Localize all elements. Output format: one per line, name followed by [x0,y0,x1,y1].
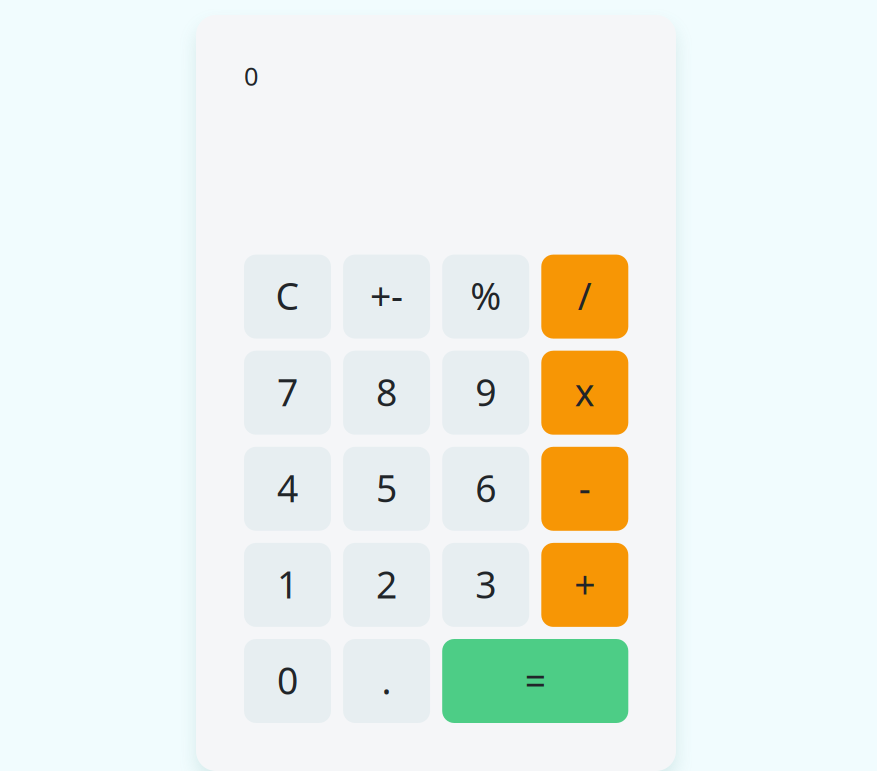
staticText: 0 [277,655,298,705]
button[interactable]: . [343,639,430,723]
staticText: 9 [475,367,496,416]
button[interactable]: 0 [244,639,331,723]
staticText: + [574,559,595,609]
staticText: 2 [376,559,397,609]
button[interactable]: 8 [343,351,430,435]
button[interactable]: 5 [343,447,430,531]
staticText: % [470,271,501,320]
staticText: / [578,271,592,320]
button[interactable]: 7 [244,351,331,435]
button[interactable]: x [541,351,628,435]
button[interactable]: / [541,255,628,339]
staticText: - [579,463,591,513]
button[interactable]: 2 [343,543,430,627]
button[interactable]: + [541,543,628,627]
button[interactable]: 1 [244,543,331,627]
button[interactable]: +- [343,255,430,339]
staticText: 3 [475,559,496,609]
staticText: 6 [475,463,496,513]
button[interactable]: % [442,255,529,339]
button[interactable]: = [442,639,628,723]
staticText: 4 [277,463,298,513]
staticText: = [525,655,546,705]
button[interactable]: 3 [442,543,529,627]
staticText: 5 [376,463,397,513]
staticText: 7 [277,367,298,416]
staticText: x [575,367,595,416]
button[interactable]: - [541,447,628,531]
staticText: C [275,271,299,320]
staticText: 1 [277,559,298,609]
button[interactable]: 6 [442,447,529,531]
staticText: 8 [376,367,397,416]
button[interactable]: C [244,255,331,339]
button[interactable]: 4 [244,447,331,531]
button[interactable]: 9 [442,351,529,435]
staticText: +- [370,271,403,320]
staticText: 0 [244,59,258,93]
staticText: . [382,655,392,705]
